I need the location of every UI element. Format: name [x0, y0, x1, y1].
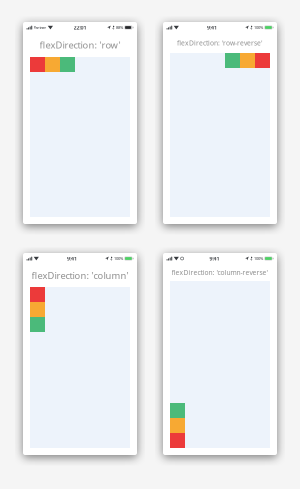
staticText: flexDirection: 'row-reverse' — [177, 39, 263, 47]
button[interactable]: 9:41 — [23, 253, 137, 455]
staticText: Partner — [33, 25, 46, 30]
staticText: 22:01 — [74, 24, 87, 31]
staticText: 88% — [116, 25, 123, 30]
button[interactable]: 9:41 — [163, 253, 277, 455]
staticText: flexDirection: 'column-reverse' — [171, 268, 268, 277]
staticText: flexDirection: 'row' — [39, 39, 120, 51]
staticText: 100% — [114, 256, 123, 261]
staticText: 9:41 — [207, 24, 217, 31]
staticText: 9:41 — [67, 255, 77, 262]
staticText: flexDirection: 'column' — [31, 269, 128, 282]
button[interactable]: Partner — [23, 22, 137, 224]
staticText: 100% — [254, 25, 263, 30]
button[interactable]: 9:41 — [163, 22, 277, 224]
staticText: 100% — [254, 256, 263, 261]
staticText: 9:41 — [209, 255, 219, 262]
